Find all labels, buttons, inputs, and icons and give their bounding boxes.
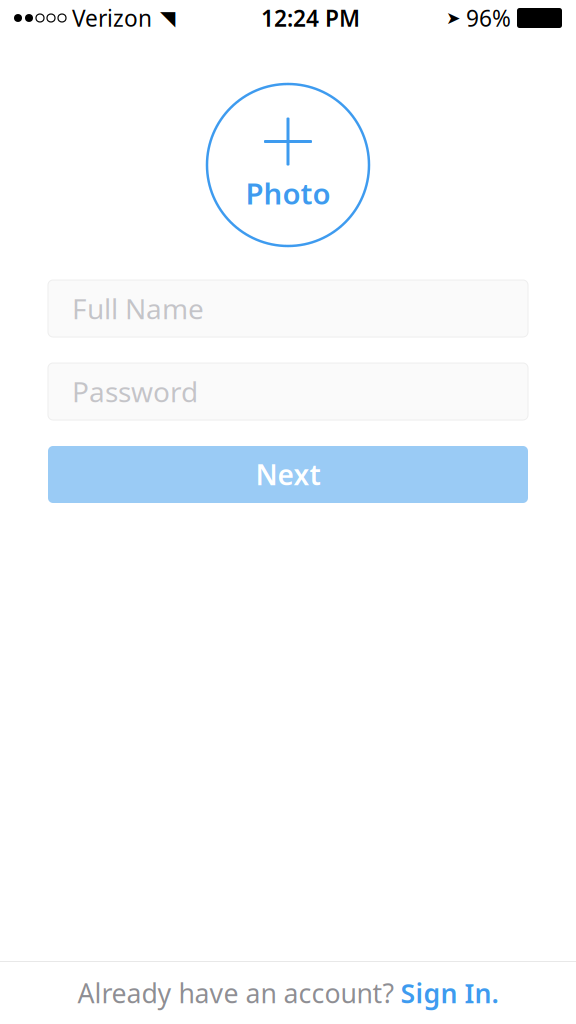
- staticText: Next: [255, 456, 320, 493]
- staticText: 96%: [466, 3, 511, 33]
- button[interactable]: Already have an account?: [0, 962, 576, 1024]
- staticText: Verizon: [72, 3, 152, 33]
- button[interactable]: Add Photo: [207, 84, 369, 246]
- staticText: ➤: [446, 8, 461, 28]
- button[interactable]: Next: [48, 446, 528, 503]
- staticText: Password: [72, 373, 198, 410]
- staticText: ◥: [160, 7, 175, 29]
- staticText: Photo: [245, 173, 330, 212]
- staticText: Already have an account?: [77, 975, 394, 1011]
- staticText: Full Name: [72, 290, 204, 327]
- staticText: Sign In.: [400, 975, 498, 1011]
- staticText: 12:24 PM: [261, 3, 360, 33]
- button[interactable]: Full Name: [48, 280, 528, 337]
- button[interactable]: Password: [48, 363, 528, 420]
